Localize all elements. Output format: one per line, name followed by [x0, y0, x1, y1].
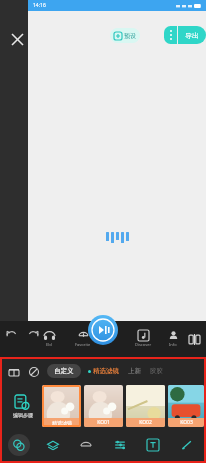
staticText: Favorite: [75, 342, 91, 347]
button[interactable]: 胶胶: [150, 367, 163, 375]
button[interactable]: Sky: [75, 434, 97, 456]
staticText: KO03: [180, 419, 193, 426]
button[interactable]: KO03: [168, 385, 204, 427]
button[interactable]: 精选滤镜: [42, 385, 81, 427]
button[interactable]: Redo: [26, 327, 40, 341]
button[interactable]: Play preview: [88, 315, 118, 345]
button[interactable]: KO02: [126, 385, 165, 427]
staticText: Info: [169, 342, 177, 347]
button[interactable]: Favorite: [70, 330, 96, 347]
button[interactable]: Layers: [42, 434, 64, 456]
button[interactable]: Filter: [8, 434, 30, 456]
button[interactable]: None: [27, 365, 40, 378]
button[interactable]: Adjust: [109, 434, 131, 456]
button[interactable]: Eld: [36, 330, 62, 347]
button[interactable]: Info: [160, 330, 186, 347]
button[interactable]: 编辑步骤: [6, 383, 39, 429]
button[interactable]: Undo: [4, 327, 18, 341]
staticText: 精选滤镜: [52, 420, 72, 426]
staticText: 14:16: [33, 2, 46, 9]
button[interactable]: 精选滤镜: [88, 367, 119, 375]
staticText: 预设: [124, 32, 136, 40]
staticText: Eld: [46, 342, 52, 347]
staticText: KO01: [97, 419, 110, 426]
button[interactable]: 自定义: [47, 364, 81, 378]
button[interactable]: 预设: [110, 28, 140, 43]
button[interactable]: Text: [142, 434, 164, 456]
button[interactable]: Split screen: [187, 332, 201, 346]
staticText: 自定义: [54, 367, 74, 375]
button[interactable]: More options: [164, 26, 177, 44]
staticText: 精选滤镜: [93, 367, 119, 375]
button[interactable]: Close: [4, 26, 30, 52]
button[interactable]: Draw: [176, 434, 198, 456]
button[interactable]: Store: [7, 365, 20, 378]
staticText: Discover: [135, 342, 152, 347]
button[interactable]: 上新: [128, 367, 141, 375]
button[interactable]: 导出: [178, 26, 206, 44]
staticText: 导出: [185, 31, 199, 40]
staticText: 编辑步骤: [13, 412, 33, 418]
button[interactable]: KO01: [84, 385, 123, 427]
staticText: KO02: [139, 419, 152, 426]
button[interactable]: Discover: [130, 330, 156, 347]
